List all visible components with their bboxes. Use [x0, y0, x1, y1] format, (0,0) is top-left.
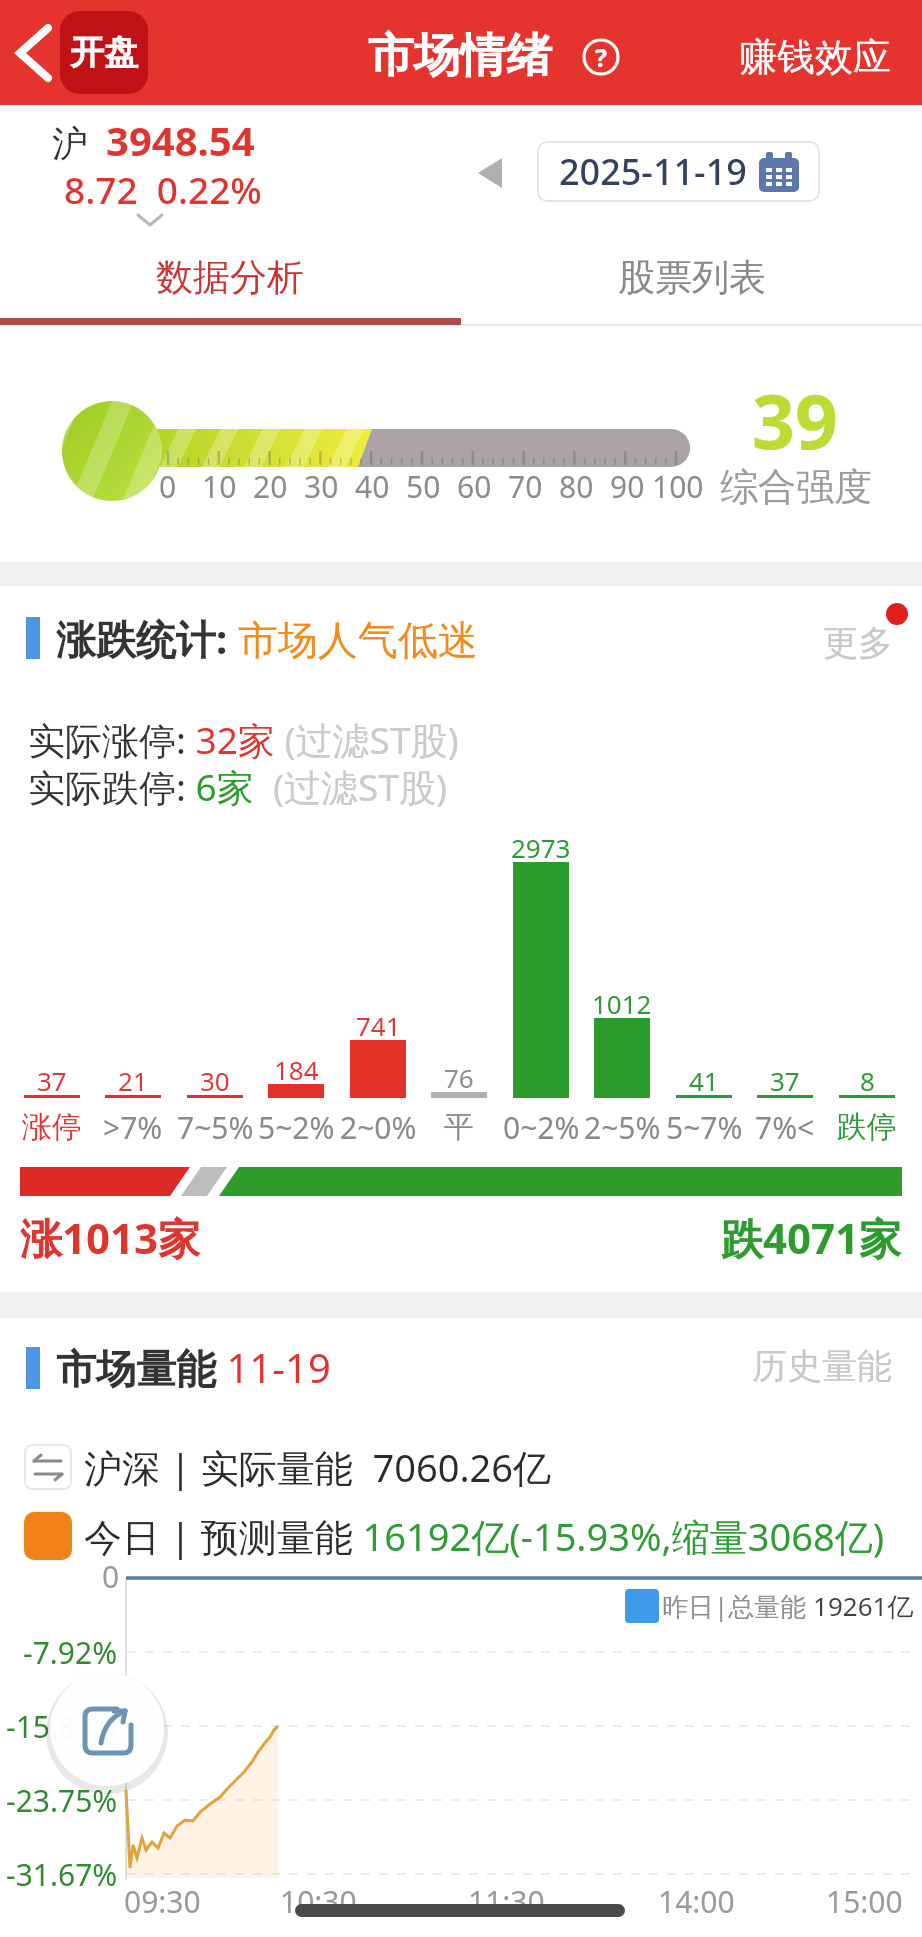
staticText: 50 — [406, 466, 441, 507]
staticText: 0 — [159, 466, 177, 507]
staticText: 2973 — [511, 830, 571, 865]
staticText: 2~0% — [340, 1107, 417, 1148]
staticText: 184 — [274, 1052, 319, 1087]
staticText: 跌4071家 — [721, 1209, 902, 1266]
staticText: 沪 — [52, 121, 88, 166]
staticText: 76 — [444, 1060, 474, 1095]
button[interactable] — [8, 18, 60, 88]
button[interactable] — [0, 240, 461, 320]
staticText: 11:30 — [468, 1881, 545, 1922]
staticText: 15:00 — [826, 1881, 903, 1922]
staticText: 今日 | 预测量能 16192亿(-15.93%,缩量3068亿) — [84, 1510, 885, 1562]
staticText: 70 — [508, 466, 543, 507]
staticText: 数据分析 — [156, 254, 304, 301]
staticText: 09:30 — [124, 1881, 201, 1922]
staticText: 实际涨停: 32家 (过滤ST股) — [28, 714, 459, 765]
staticText: 20 — [253, 466, 288, 507]
button[interactable] — [730, 1330, 910, 1400]
staticText: 沪深 | 实际量能 7060.26亿 — [84, 1441, 552, 1493]
staticText: 30 — [304, 466, 339, 507]
staticText: 平 — [444, 1108, 474, 1146]
staticText: ? — [595, 40, 607, 74]
staticText: 涨1013家 — [20, 1209, 201, 1266]
staticText: 市场情绪 — [368, 27, 552, 85]
staticText: -7.92% — [23, 1632, 118, 1673]
staticText: 昨日|总量能 19261亿 — [662, 1588, 914, 1624]
staticText: 市场量能 11-19 — [56, 1340, 331, 1395]
staticText: 3948.54 — [106, 113, 255, 167]
button[interactable] — [50, 1672, 164, 1786]
staticText: 股票列表 — [618, 254, 766, 301]
staticText: 0~2% — [503, 1107, 580, 1148]
staticText: 60 — [457, 466, 492, 507]
staticText: 39 — [752, 369, 838, 459]
staticText: 7~5% — [177, 1107, 254, 1148]
staticText: 8.72 0.22% — [64, 164, 262, 214]
staticText: -23.75% — [6, 1780, 118, 1821]
staticText: -15.83% — [6, 1706, 118, 1747]
staticText: 2025-11-19 — [559, 147, 747, 196]
staticText: 30 — [200, 1063, 230, 1098]
staticText: 37 — [37, 1063, 67, 1098]
staticText: 21 — [118, 1063, 148, 1098]
staticText: 涨跌统计: 市场人气低迷 — [56, 611, 478, 666]
staticText: 8 — [860, 1063, 875, 1098]
staticText: 实际跌停: 6家 (过滤ST股) — [28, 761, 448, 812]
staticText: 开盘 — [70, 31, 138, 74]
staticText: 41 — [689, 1063, 719, 1098]
staticText: 7%< — [755, 1107, 815, 1148]
button[interactable]: 2025-11-19 — [537, 141, 820, 202]
staticText: 历史量能 — [752, 1344, 892, 1388]
button[interactable] — [461, 240, 922, 320]
staticText: 741 — [356, 1008, 401, 1043]
staticText: 37 — [770, 1063, 800, 1098]
staticText: 100 — [652, 466, 704, 507]
staticText: 跌停 — [837, 1108, 897, 1146]
staticText: 2~5% — [584, 1107, 661, 1148]
staticText: 10 — [202, 466, 237, 507]
staticText: 更多 — [823, 621, 893, 665]
staticText: 涨停 — [22, 1108, 82, 1146]
staticText: 5~7% — [666, 1107, 743, 1148]
staticText: 40 — [355, 466, 390, 507]
staticText: -31.67% — [6, 1854, 118, 1895]
staticText: 0 — [102, 1556, 120, 1597]
button[interactable] — [730, 18, 910, 94]
staticText: 5~2% — [258, 1107, 335, 1148]
button[interactable]: ? — [581, 37, 621, 77]
staticText: 综合强度 — [720, 463, 872, 511]
staticText: 80 — [559, 466, 594, 507]
button[interactable]: 开盘 — [60, 11, 148, 94]
staticText: 14:00 — [658, 1881, 735, 1922]
staticText: 10:30 — [280, 1881, 357, 1922]
staticText: 赚钱效应 — [739, 33, 891, 81]
staticText: 1012 — [592, 986, 652, 1021]
staticText: 90 — [610, 466, 645, 507]
button[interactable] — [800, 600, 910, 670]
staticText: >7% — [103, 1107, 163, 1148]
